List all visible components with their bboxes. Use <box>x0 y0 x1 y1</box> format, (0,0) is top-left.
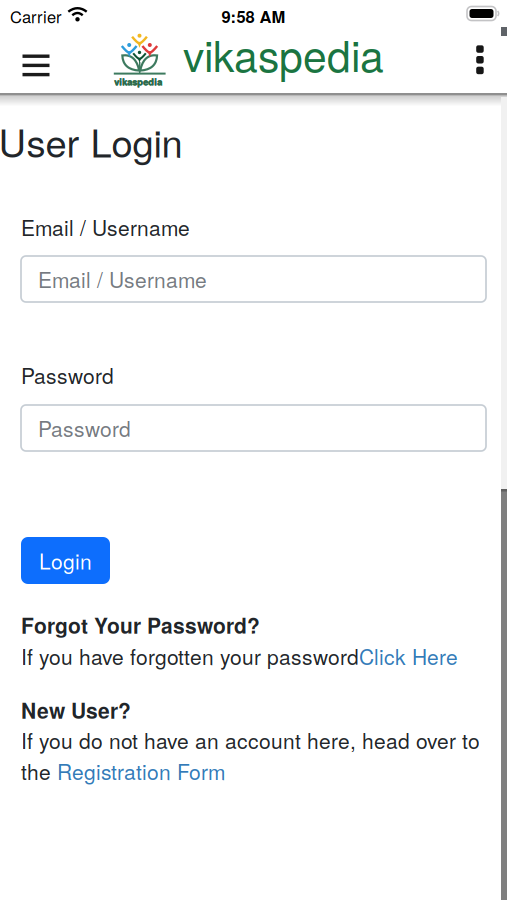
staticText: Login <box>39 545 92 576</box>
staticText: vikaspedia <box>183 23 384 84</box>
button[interactable]: Registration Form <box>57 756 225 786</box>
staticText: If you do not have an account here, head… <box>21 725 480 755</box>
staticText: User Login <box>0 114 182 168</box>
staticText: Email / Username <box>38 264 207 294</box>
staticText: Password <box>38 413 131 443</box>
button[interactable]: Menu <box>22 54 49 76</box>
staticText: Email / Username <box>21 212 190 242</box>
staticText: Carrier <box>10 4 62 28</box>
staticText: vikaspedia <box>114 75 162 88</box>
staticText: vikaspedia <box>114 75 162 88</box>
staticText: Forgot Your Password? <box>21 610 260 640</box>
button[interactable]: More options <box>476 45 484 74</box>
staticText: 9:58 AM <box>221 4 285 28</box>
staticText: If you have forgotten your password <box>21 641 359 671</box>
staticText: vikaspedia <box>114 75 162 88</box>
button[interactable]: Password <box>21 405 486 451</box>
button[interactable]: Email / Username <box>21 256 486 302</box>
button[interactable]: Click Here <box>359 641 458 671</box>
staticText: Registration Form <box>57 756 225 786</box>
button[interactable]: Login <box>21 537 110 584</box>
staticText: vikaspedia <box>114 75 162 88</box>
staticText: the <box>21 756 57 786</box>
staticText: New User? <box>21 695 131 725</box>
staticText: Click Here <box>359 641 458 671</box>
staticText: Password <box>21 360 114 390</box>
